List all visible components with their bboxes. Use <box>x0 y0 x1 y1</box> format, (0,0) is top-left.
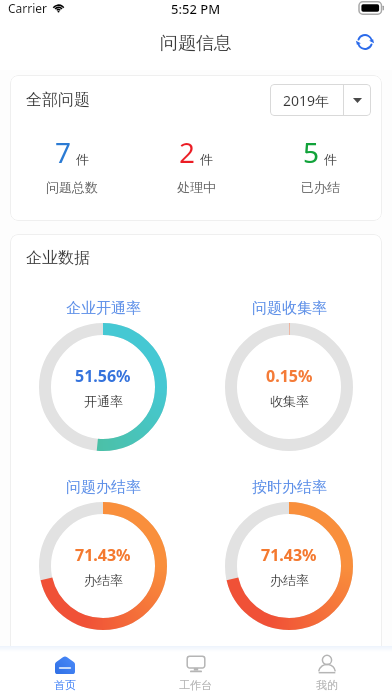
staticText: 工作台 <box>179 678 212 692</box>
staticText: 5 <box>303 133 320 171</box>
staticText: 件 <box>324 151 337 167</box>
staticText: 我的 <box>316 678 338 692</box>
button[interactable]: 首页 <box>0 646 130 696</box>
staticText: 2019年 <box>283 91 330 110</box>
staticText: 问题总数 <box>46 179 98 195</box>
staticText: 全部问题 <box>26 90 90 110</box>
staticText: 企业开通率 <box>66 299 141 318</box>
staticText: 开通率 <box>84 393 123 409</box>
staticText: 0.15% <box>266 365 313 387</box>
staticText: 办结率 <box>270 572 309 588</box>
staticText: 件 <box>76 151 89 167</box>
staticText: Carrier <box>8 0 48 16</box>
staticText: 处理中 <box>177 179 216 195</box>
staticText: 收集率 <box>270 393 309 409</box>
staticText: 问题收集率 <box>252 299 327 318</box>
button[interactable]: 工作台 <box>130 646 261 696</box>
staticText: 51.56% <box>75 365 131 387</box>
staticText: 件 <box>200 151 213 167</box>
staticText: 问题办结率 <box>66 478 141 497</box>
staticText: 71.43% <box>261 544 317 566</box>
button[interactable]: Refresh <box>349 26 381 58</box>
staticText: 办结率 <box>84 572 123 588</box>
button[interactable]: 我的 <box>261 646 392 696</box>
staticText: 企业数据 <box>26 248 90 268</box>
staticText: 按时办结率 <box>252 478 327 497</box>
staticText: 已办结 <box>301 179 340 195</box>
button[interactable]: 2019年 <box>270 84 371 116</box>
staticText: 5:52 PM <box>171 0 221 18</box>
staticText: 71.43% <box>75 544 131 566</box>
staticText: 问题信息 <box>160 32 232 55</box>
staticText: 首页 <box>54 678 76 692</box>
staticText: 2 <box>179 133 196 171</box>
staticText: 7 <box>55 133 72 171</box>
